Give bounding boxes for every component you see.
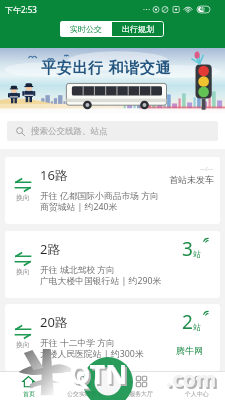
staticText: 个人中心 [185,390,209,398]
staticText: 站 [193,249,201,259]
staticText: 公交实时查询 [67,390,103,398]
staticText: 换向 [16,193,30,202]
staticText: 20路 [40,313,68,331]
staticText: 站 [193,322,201,332]
staticText: 开往 城北驾校 方向 [40,264,115,276]
staticText: 实时公交 [70,24,102,34]
button[interactable]: 换向 [5,304,220,371]
staticText: 2路 [40,240,61,258]
staticText: .com [166,365,217,394]
button[interactable]: 搜索公交线路、站点 [7,121,218,141]
button[interactable]: 换向 [5,231,40,298]
staticText: 服务大厅 [129,390,153,398]
staticText: 平安出行 和谐交通 [41,57,172,77]
staticText: 开往 十二中学 方向 [40,337,115,349]
staticText: 首页 [23,390,35,398]
staticText: 出行规划 [122,24,154,34]
staticText: .com [168,367,219,396]
button[interactable]: 换向 [5,157,220,224]
button[interactable]: 出行规划 [112,21,164,37]
button[interactable]: 实时公交 [60,21,112,37]
staticText: 腾牛网 [176,345,203,356]
staticText: QTN [71,357,130,394]
staticText: 首站未发车 [169,174,214,185]
button[interactable]: 换向 [5,304,40,371]
staticText: 换向 [16,267,30,276]
staticText: 2 [182,309,193,335]
staticText: 大楼人民医院站 | 约300米 [40,348,144,360]
staticText: QTN [69,355,128,392]
button[interactable]: 首页 [0,372,57,400]
staticText: 3 [182,236,193,262]
button[interactable]: 公交实时查询 [57,372,113,400]
staticText: 下午2:53 [5,4,37,15]
staticText: 16路 [40,166,68,184]
button[interactable]: 服务大厅 [113,372,169,400]
staticText: 换向 [16,340,30,349]
staticText: 广电大楼中国银行站 | 约290米 [40,275,162,287]
button[interactable]: 个人中心 [169,372,225,400]
staticText: 开往 亿都国际小商品市场 方向 [40,190,159,202]
button[interactable]: 换向 [5,231,220,298]
staticText: 49 [200,6,206,13]
button[interactable]: 换向 [5,157,40,224]
staticText: 商贸城站 | 约240米 [40,201,118,213]
staticText: —/— [200,165,214,172]
staticText: 搜索公交线路、站点 [31,126,108,137]
